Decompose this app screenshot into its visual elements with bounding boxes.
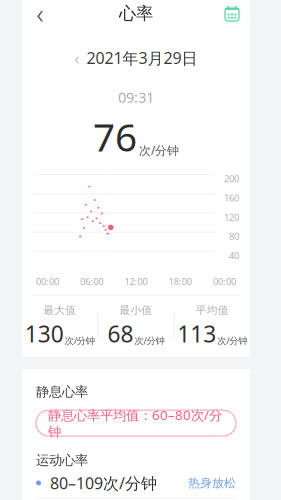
staticText: 次/分钟 <box>65 334 95 347</box>
staticText: 12:00 <box>124 275 147 287</box>
staticText: 2021年3月29日 <box>86 47 197 68</box>
staticText: 120 <box>224 211 239 223</box>
staticText: 00:00 <box>213 275 236 287</box>
staticText: 平均值 <box>196 303 229 317</box>
staticText: 静息心率平均值：60–80次/分钟 <box>48 406 222 440</box>
staticText: 次/分钟 <box>139 142 179 158</box>
staticText: 次/分钟 <box>134 334 164 347</box>
staticText: 40 <box>229 249 239 262</box>
staticText: 18:00 <box>169 275 192 287</box>
button[interactable]: 80–109次/分钟 <box>36 468 236 498</box>
staticText: 06:00 <box>80 275 103 287</box>
button[interactable]: 选择日期 <box>214 0 250 29</box>
staticText: ‹ <box>36 0 43 31</box>
button[interactable]: 110–129次/分钟 <box>36 498 236 500</box>
button[interactable]: 返回 <box>22 0 58 29</box>
staticText: 80 <box>229 230 239 242</box>
staticText: 最小值 <box>119 303 152 317</box>
staticText: 最大值 <box>43 303 76 317</box>
staticText: 00:00 <box>36 275 59 287</box>
staticText: 09:31 <box>118 87 154 107</box>
staticText: 68 <box>107 319 133 349</box>
staticText: 热身放松 <box>188 476 236 490</box>
staticText: 76 <box>93 111 137 162</box>
staticText: 静息心率 <box>36 384 88 400</box>
staticText: 80–109次/分钟 <box>50 472 157 494</box>
staticText: 160 <box>224 192 239 204</box>
staticText: ‹ <box>74 45 79 70</box>
button[interactable]: ‹ <box>22 39 250 76</box>
staticText: 130 <box>25 319 64 349</box>
staticText: 113 <box>177 319 216 349</box>
staticText: 次/分钟 <box>217 334 247 347</box>
staticText: 心率 <box>119 3 153 24</box>
staticText: 200 <box>224 172 239 185</box>
staticText: 运动心率 <box>36 452 88 468</box>
